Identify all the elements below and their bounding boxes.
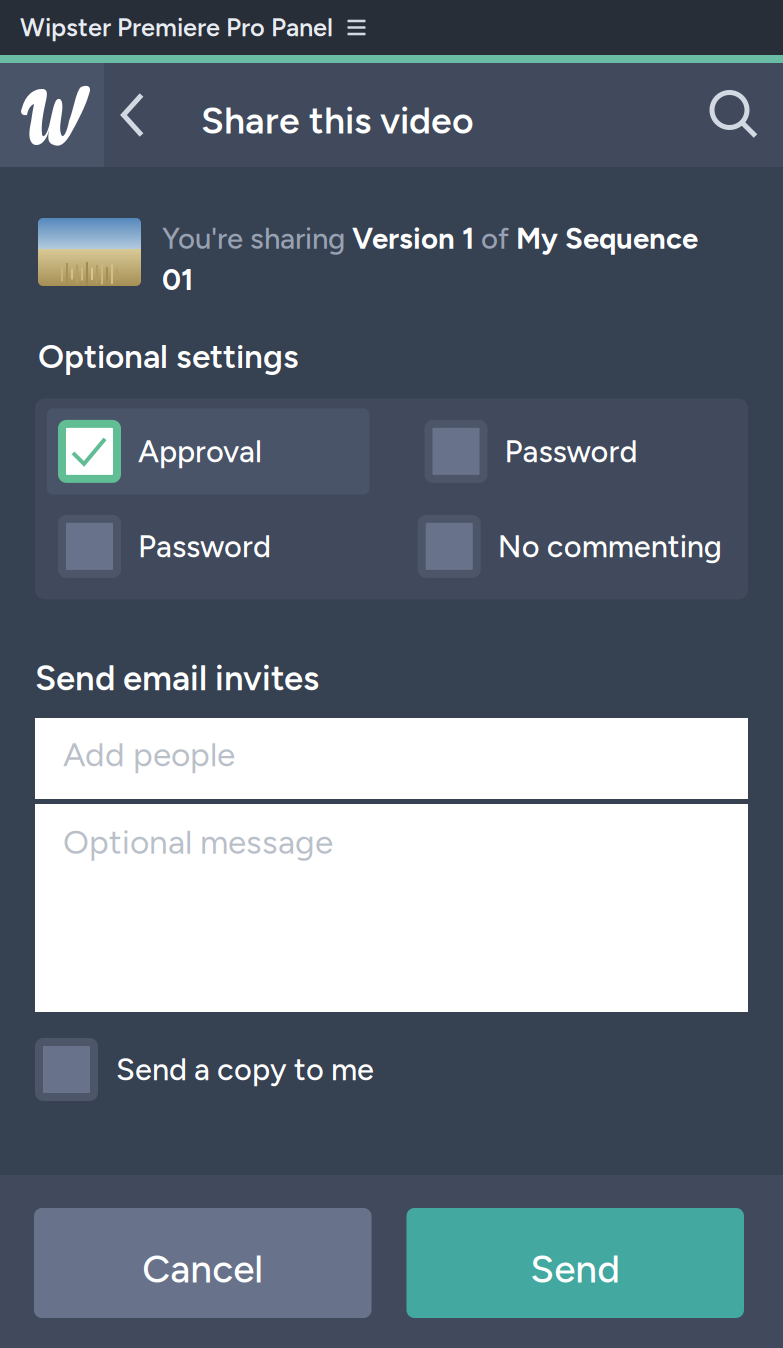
staticText: Approval [138, 433, 262, 470]
button[interactable]: Send [406, 1208, 744, 1318]
staticText: Cancel [142, 1246, 263, 1292]
button[interactable]: Approval [47, 408, 369, 494]
staticText: Optional message [63, 822, 333, 862]
button[interactable]: Send a copy to me [0, 1012, 783, 1101]
staticText: Send a copy to me [116, 1051, 374, 1088]
button[interactable]: Password [413, 408, 736, 494]
staticText: Optional settings [38, 336, 299, 376]
staticText: of [474, 221, 516, 256]
staticText: No commenting [498, 528, 722, 565]
staticText: Share this video [201, 98, 474, 143]
staticText: Add people [63, 734, 235, 774]
button[interactable]: Password [47, 503, 369, 589]
staticText: Password [504, 433, 637, 470]
staticText: 01 [162, 262, 193, 297]
staticText: My Sequence [516, 221, 698, 256]
button[interactable]: Back [104, 63, 161, 167]
button[interactable]: Search [686, 63, 783, 167]
staticText: Version 1 [352, 221, 474, 256]
staticText: You're sharing [162, 221, 352, 256]
staticText: Password [138, 528, 271, 565]
button[interactable]: Menu [333, 0, 380, 55]
staticText: Wipster Premiere Pro Panel [20, 12, 333, 43]
button[interactable]: No commenting [413, 503, 736, 589]
staticText: Send email invites [35, 657, 319, 699]
button[interactable]: Wipster home [0, 63, 104, 167]
button[interactable]: Cancel [34, 1208, 371, 1318]
staticText: Send [530, 1246, 620, 1292]
